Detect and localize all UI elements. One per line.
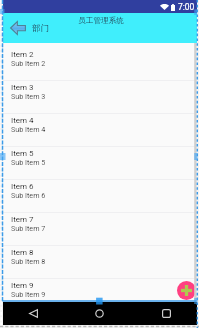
button[interactable]: Back to 部门 <box>10 21 49 35</box>
staticText: Item 8 <box>11 248 34 257</box>
staticText: Item 4 <box>11 116 34 125</box>
button[interactable]: Back <box>19 302 47 325</box>
staticText: Item 6 <box>11 182 34 191</box>
staticText: Sub Item 9 <box>11 290 46 298</box>
button[interactable]: Item 6 <box>3 180 197 213</box>
staticText: Item 7 <box>11 215 34 224</box>
button[interactable]: Item 7 <box>3 213 197 246</box>
button[interactable]: Item 3 <box>3 81 197 114</box>
staticText: 7:00 <box>178 2 195 12</box>
staticText: Sub Item 6 <box>11 191 46 199</box>
staticText: 员工管理系统 <box>78 16 124 26</box>
staticText: Sub Item 5 <box>11 158 46 166</box>
staticText: Sub Item 3 <box>11 92 46 100</box>
button[interactable]: Item 5 <box>3 147 197 180</box>
button[interactable]: Item 9 <box>3 279 197 302</box>
staticText: Sub Item 2 <box>11 59 46 67</box>
button[interactable]: Item 4 <box>3 114 197 147</box>
staticText: Item 2 <box>11 50 34 59</box>
staticText: Item 9 <box>11 281 34 290</box>
staticText: Sub Item 7 <box>11 224 46 232</box>
button[interactable]: Recent apps <box>152 302 180 325</box>
button[interactable]: Item 2 <box>3 48 197 81</box>
staticText: Sub Item 4 <box>11 125 46 133</box>
button[interactable]: Add new employee <box>177 281 196 300</box>
staticText: Item 5 <box>11 149 34 158</box>
staticText: Sub Item 8 <box>11 257 46 265</box>
staticText: Item 3 <box>11 83 34 92</box>
button[interactable]: Item 8 <box>3 246 197 279</box>
button[interactable]: Home <box>85 302 113 325</box>
staticText: 部门 <box>32 23 49 34</box>
